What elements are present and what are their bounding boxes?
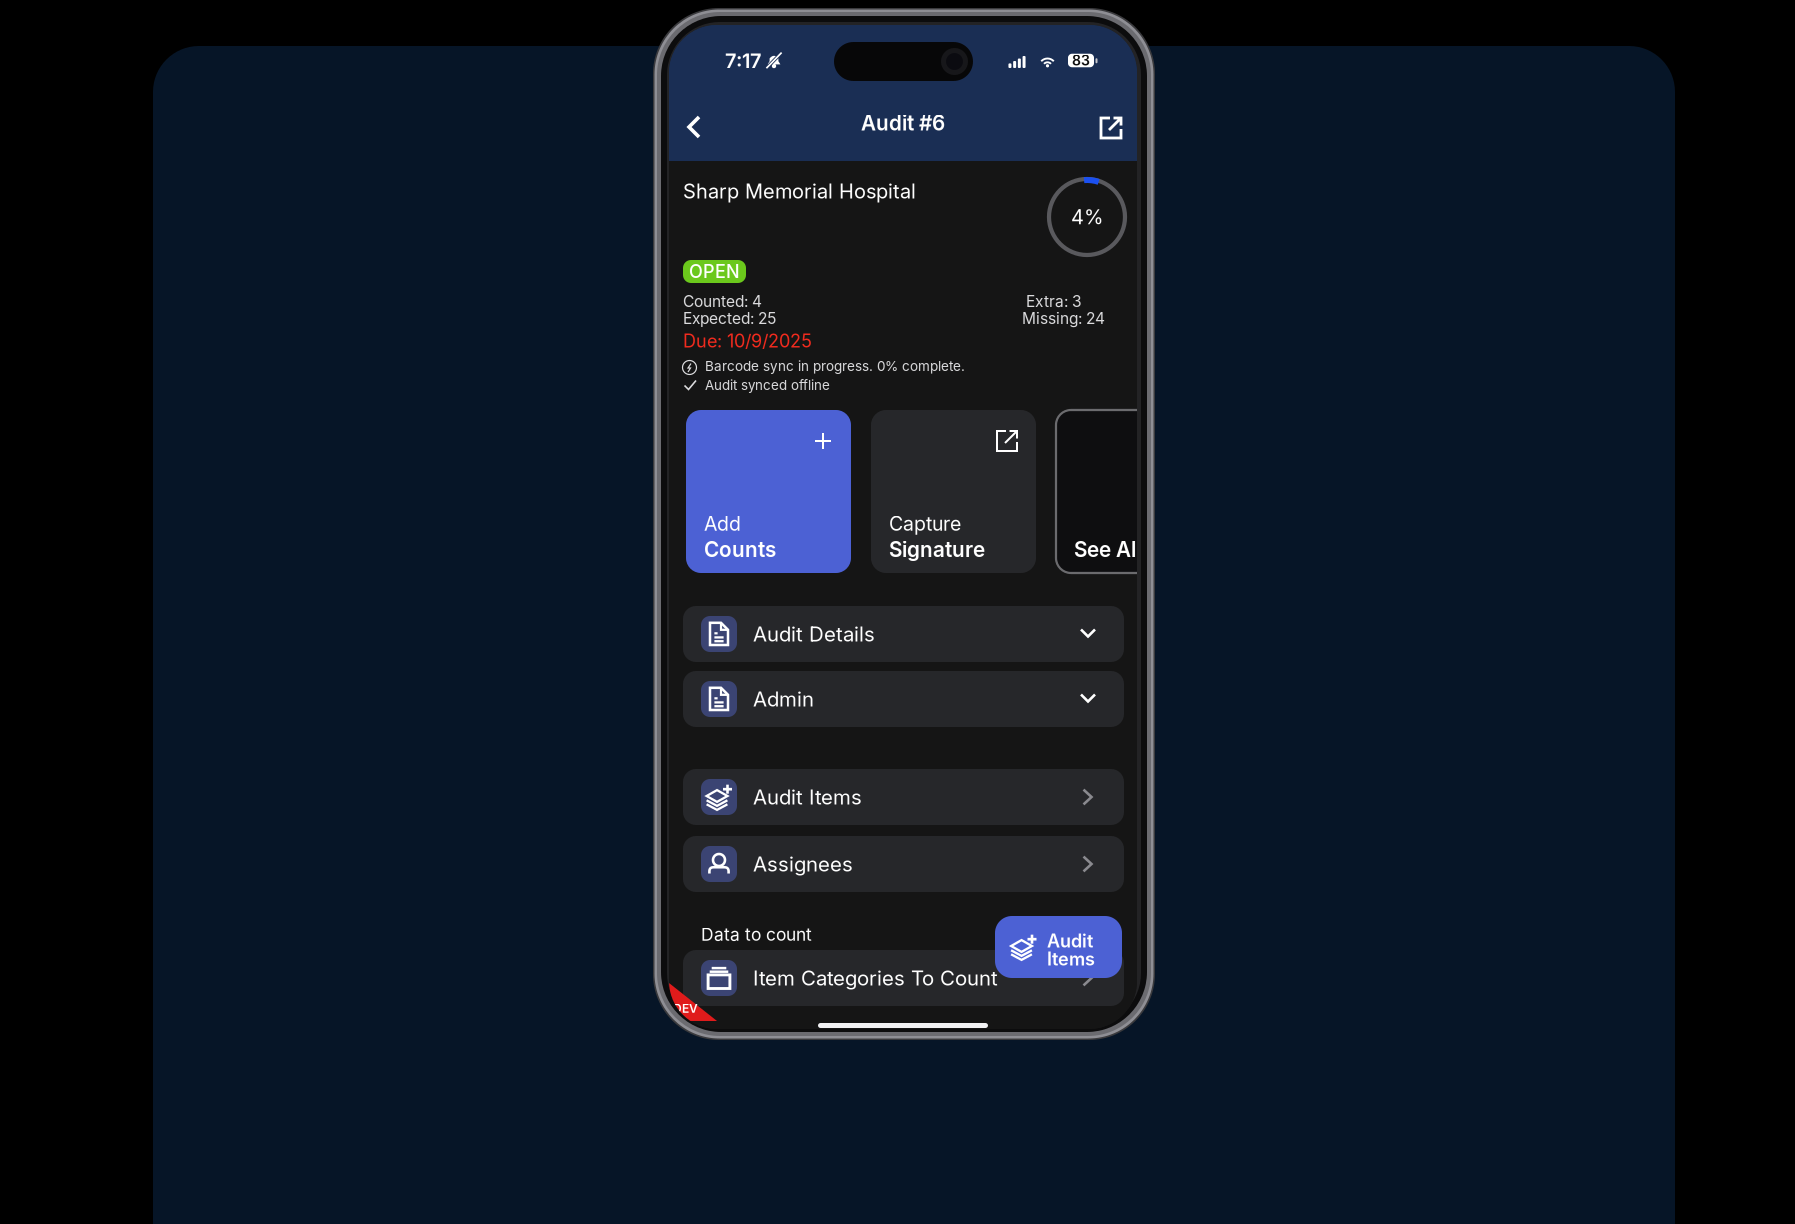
- staticText: 7:17: [725, 49, 761, 73]
- button[interactable]: Item Categories To Count: [683, 950, 1124, 1006]
- staticText: Signature: [889, 537, 985, 562]
- button[interactable]: See All: [1056, 410, 1221, 573]
- button[interactable]: Admin: [683, 671, 1124, 727]
- staticText: See All: [1074, 537, 1141, 562]
- staticText: Audit Details: [753, 622, 875, 646]
- staticText: 4%: [1071, 205, 1103, 229]
- staticText: DEV: [673, 1001, 698, 1015]
- staticText: Add: [704, 512, 741, 536]
- button[interactable]: Audit Details: [683, 606, 1124, 662]
- staticText: Audit #6: [861, 110, 945, 135]
- staticText: Admin: [753, 687, 814, 711]
- staticText: Audit Items: [753, 785, 862, 809]
- button[interactable]: Audit: [995, 916, 1122, 978]
- button[interactable]: Add: [686, 410, 851, 573]
- button[interactable]: Back: [670, 99, 722, 157]
- button[interactable]: Share: [1084, 99, 1138, 157]
- staticText: Extra: 3: [1026, 292, 1082, 311]
- staticText: Items: [1047, 948, 1095, 970]
- staticText: Missing: 24: [1022, 309, 1105, 328]
- staticText: Item Categories To Count: [753, 966, 998, 990]
- staticText: Data to count: [701, 924, 812, 945]
- staticText: Expected: 25: [683, 309, 776, 328]
- staticText: Audit synced offline: [705, 377, 830, 393]
- button[interactable]: Assignees: [683, 836, 1124, 892]
- staticText: Barcode sync in progress. 0% complete.: [705, 358, 965, 374]
- staticText: Counted: 4: [683, 292, 762, 311]
- staticText: OPEN: [689, 261, 740, 282]
- staticText: Due: 10/9/2025: [683, 330, 812, 352]
- staticText: Assignees: [753, 852, 853, 876]
- button[interactable]: Audit Items: [683, 769, 1124, 825]
- button[interactable]: Capture: [871, 410, 1036, 573]
- staticText: Sharp Memorial Hospital: [683, 179, 916, 203]
- staticText: Counts: [704, 537, 776, 562]
- staticText: Audit: [1047, 930, 1093, 952]
- staticText: 83: [1072, 52, 1090, 69]
- staticText: Capture: [889, 512, 961, 536]
